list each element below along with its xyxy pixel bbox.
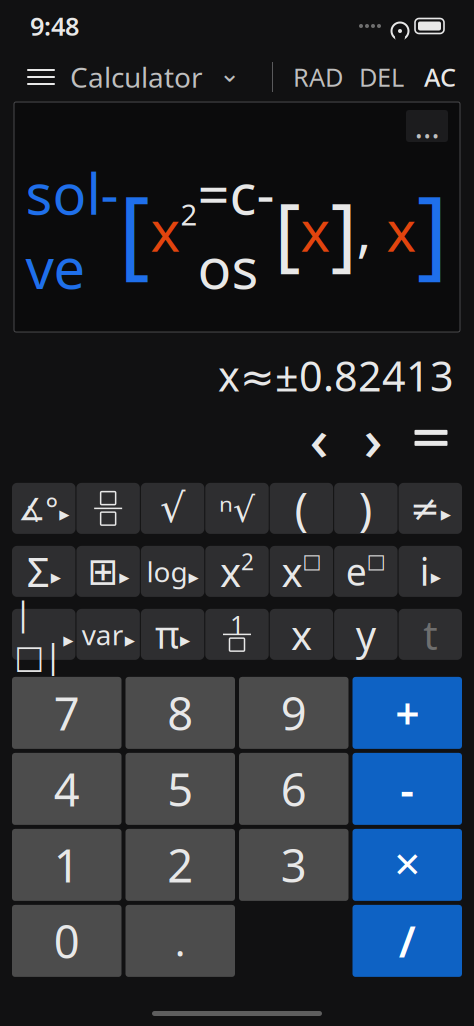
button[interactable]: e [334,546,397,597]
staticText: ▶ [119,570,129,585]
staticText: 2 [180,195,197,234]
staticText: x [300,193,330,267]
staticText: x [150,193,180,267]
button[interactable]: var [76,609,140,660]
button[interactable]: ✕ [352,829,462,901]
button[interactable]: . [125,905,235,977]
staticText: ] [416,166,448,294]
button[interactable]: √ [141,483,204,534]
button[interactable]: y [334,609,397,660]
staticText: ▶ [180,633,190,648]
button[interactable]: AC [414,55,456,99]
staticText: solve [25,156,118,304]
staticText: ✕ [393,845,422,884]
button[interactable]: Next [346,415,400,461]
staticText: DEL [359,60,404,94]
button[interactable]: ⊞ [76,546,140,597]
button[interactable]: 4 [12,753,121,825]
button[interactable]: π [141,609,204,660]
button[interactable]: / [352,905,462,977]
staticText: RAD [293,60,343,94]
staticText: y [356,608,376,661]
staticText: ▶ [125,633,135,648]
button[interactable]: Fraction [205,609,269,660]
button[interactable]: 9 [239,677,348,749]
staticText: Calculator [70,58,203,96]
staticText: 5 [167,759,193,819]
button[interactable]: Previous [292,415,346,461]
button[interactable]: Menu [18,55,64,99]
staticText: x [220,545,241,598]
staticText: □ [367,550,386,573]
staticText: AC [424,60,456,94]
button[interactable]: 7 [12,677,121,749]
staticText: e [346,547,367,596]
staticText: 2 [241,546,254,576]
staticText: ⁿ√ [219,485,255,531]
staticText: x [371,193,416,267]
button[interactable]: Calculator [64,55,246,99]
staticText: =cos [197,156,274,304]
staticText: 4 [54,759,80,819]
button[interactable]: 0 [12,905,121,977]
staticText: › [363,399,382,477]
staticText: . [175,914,186,967]
staticText: □ [302,550,321,573]
staticText: 8 [167,683,193,743]
button[interactable]: Equals [400,415,462,461]
button[interactable]: Σ [12,546,75,597]
button[interactable]: Fraction [76,483,140,534]
staticText: + [395,685,419,741]
staticText: ⊞ [87,550,118,593]
staticText: [ [118,166,150,294]
button[interactable]: ) [334,483,397,534]
button[interactable]: log [141,546,204,597]
staticText: , [356,193,371,267]
staticText: 3 [281,835,307,895]
button[interactable]: ≠ [399,483,462,534]
button[interactable]: ( [270,483,333,534]
staticText: √ [160,486,185,531]
button[interactable]: DEL [349,55,414,99]
staticText: ⌄ [219,59,240,87]
staticText: var [82,616,124,653]
staticText: 9:48 [30,9,79,43]
button[interactable]: - [352,753,462,825]
staticText: ] [330,177,356,283]
button[interactable]: + [352,677,462,749]
staticText: ▶ [59,507,69,522]
staticText: x [281,545,302,598]
button[interactable]: x [270,609,333,660]
staticText: 2 [167,835,193,895]
button[interactable]: 3 [239,829,348,901]
button[interactable]: ∡° [12,483,75,534]
button[interactable]: 2 [125,829,235,901]
staticText: ≠ [410,488,440,529]
staticText: i [420,547,430,596]
button[interactable]: |□| [12,609,75,660]
staticText: 6 [281,759,307,819]
button[interactable]: 6 [239,753,348,825]
button[interactable]: 8 [125,677,235,749]
staticText: ▶ [51,570,61,585]
button[interactable]: ⁿ√ [205,483,269,534]
button[interactable]: More options [406,110,448,142]
staticText: t [423,608,437,661]
button[interactable]: i [399,546,462,597]
staticText: |□| [14,592,62,677]
staticText: x≈±0.82413 [218,348,454,403]
staticText: [ [274,177,300,283]
staticText: log [147,553,188,590]
button[interactable]: t [399,609,462,660]
button[interactable]: RAD [287,55,349,99]
staticText: / [399,913,416,969]
button[interactable]: x [270,546,333,597]
staticText: ∡° [18,488,58,529]
button[interactable]: x [205,546,269,597]
staticText: 1 [54,835,80,895]
staticText: 1 [230,607,244,641]
button[interactable]: 1 [12,829,121,901]
button[interactable]: 5 [125,753,235,825]
staticText: … [414,105,439,147]
